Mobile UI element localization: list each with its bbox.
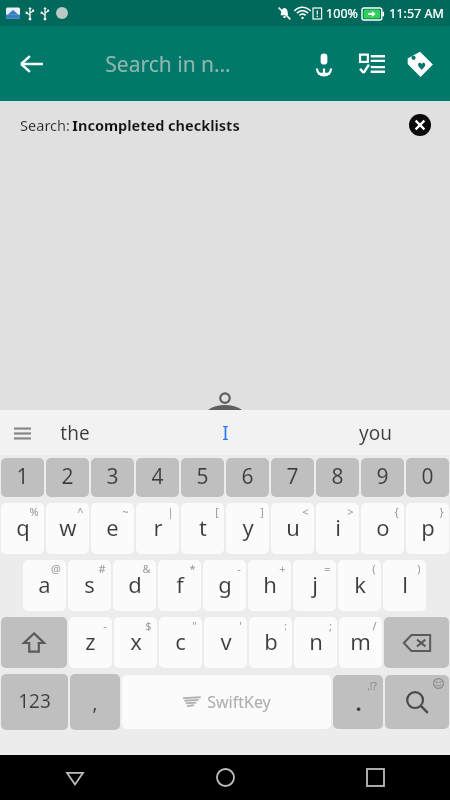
staticText: 3	[106, 462, 119, 491]
staticText: a	[38, 569, 51, 599]
button[interactable]: e	[91, 503, 134, 554]
staticText: ^	[77, 504, 84, 519]
button[interactable]: o	[361, 503, 404, 554]
button[interactable]: you	[300, 410, 450, 455]
button[interactable]: n	[294, 617, 337, 668]
button[interactable]: Shift	[1, 617, 67, 668]
staticText: Search in n…	[105, 50, 231, 79]
staticText: ,!?	[367, 679, 377, 693]
staticText: l	[402, 569, 408, 599]
staticText: w	[59, 512, 77, 542]
button[interactable]: 9	[361, 458, 404, 497]
button[interactable]: u	[271, 503, 314, 554]
button[interactable]: Back	[0, 755, 150, 800]
staticText: /	[372, 618, 377, 633]
button[interactable]: Search in n…	[105, 40, 255, 88]
button[interactable]: x	[114, 617, 157, 668]
button[interactable]: Recent apps	[300, 755, 450, 800]
button[interactable]: g	[203, 560, 246, 611]
button[interactable]: Home	[150, 755, 300, 800]
button[interactable]: d	[113, 560, 156, 611]
staticText: 1	[16, 462, 29, 491]
staticText: p	[421, 512, 435, 542]
button[interactable]: z	[69, 617, 112, 668]
staticText: '	[239, 618, 242, 633]
staticText: s	[84, 569, 95, 599]
button[interactable]: Voice search	[300, 40, 348, 88]
staticText: b	[264, 626, 278, 656]
button[interactable]: f	[158, 560, 201, 611]
staticText: )	[417, 561, 421, 576]
button[interactable]: t	[181, 503, 224, 554]
button[interactable]: k	[338, 560, 381, 611]
staticText: k	[354, 569, 366, 599]
button[interactable]: a	[23, 560, 66, 611]
button[interactable]: 7	[271, 458, 314, 497]
button[interactable]: q	[1, 503, 44, 554]
button[interactable]: 4	[136, 458, 179, 497]
button[interactable]: 8	[316, 458, 359, 497]
button[interactable]: v	[204, 617, 247, 668]
staticText: you	[359, 420, 392, 446]
button[interactable]: b	[249, 617, 292, 668]
button[interactable]: Backspace	[384, 617, 449, 668]
button[interactable]: Clear search	[404, 109, 436, 141]
button[interactable]: 1	[1, 458, 44, 497]
staticText: the	[60, 420, 90, 446]
staticText: |	[167, 504, 174, 519]
staticText: u	[286, 512, 300, 542]
staticText: #	[98, 561, 106, 576]
button[interactable]: Search:	[0, 101, 450, 149]
button[interactable]: the	[0, 410, 150, 455]
button[interactable]: i	[316, 503, 359, 554]
button[interactable]: Tags	[396, 40, 444, 88]
staticText: *	[189, 561, 196, 576]
button[interactable]: h	[248, 560, 291, 611]
button[interactable]: p	[406, 503, 449, 554]
button[interactable]: r	[136, 503, 179, 554]
staticText: 7	[286, 462, 299, 491]
staticText: j	[312, 569, 318, 599]
staticText: =	[324, 561, 331, 576]
staticText: o	[376, 512, 390, 542]
button[interactable]: c	[159, 617, 202, 668]
button[interactable]: Back	[8, 40, 56, 88]
button[interactable]: 6	[226, 458, 269, 497]
button[interactable]: m	[339, 617, 382, 668]
button[interactable]: 2	[46, 458, 89, 497]
staticText: Incompleted checklists	[72, 115, 240, 135]
button[interactable]: Menu	[4, 415, 40, 451]
button[interactable]: .	[333, 675, 383, 729]
staticText: i	[335, 512, 341, 542]
staticText: g	[218, 569, 232, 599]
button[interactable]: Checklists	[348, 40, 396, 88]
button[interactable]: w	[46, 503, 89, 554]
button[interactable]: I	[150, 410, 300, 455]
button[interactable]: l	[383, 560, 426, 611]
staticText: ]	[260, 504, 264, 519]
staticText: I	[222, 420, 229, 446]
button[interactable]: ,	[70, 674, 120, 730]
staticText: +	[279, 561, 286, 576]
button[interactable]: 3	[91, 458, 134, 497]
staticText: h	[263, 569, 277, 599]
button[interactable]: 123	[1, 674, 68, 730]
button[interactable]: Search	[385, 675, 449, 729]
staticText: (	[372, 561, 376, 576]
staticText: $	[145, 618, 152, 633]
staticText: Search:	[18, 115, 72, 135]
staticText: d	[128, 569, 142, 599]
staticText: @	[51, 561, 61, 576]
staticText: ~	[122, 504, 129, 519]
button[interactable]: s	[68, 560, 111, 611]
button[interactable]: j	[293, 560, 336, 611]
staticText: z	[85, 626, 96, 656]
button[interactable]: y	[226, 503, 269, 554]
button[interactable]: 0	[406, 458, 449, 497]
staticText: [	[215, 504, 219, 519]
staticText: 5	[196, 462, 209, 491]
button[interactable]: Space	[122, 675, 331, 729]
button[interactable]: 5	[181, 458, 224, 497]
staticText: <	[302, 504, 309, 519]
staticText: ;	[329, 618, 332, 633]
